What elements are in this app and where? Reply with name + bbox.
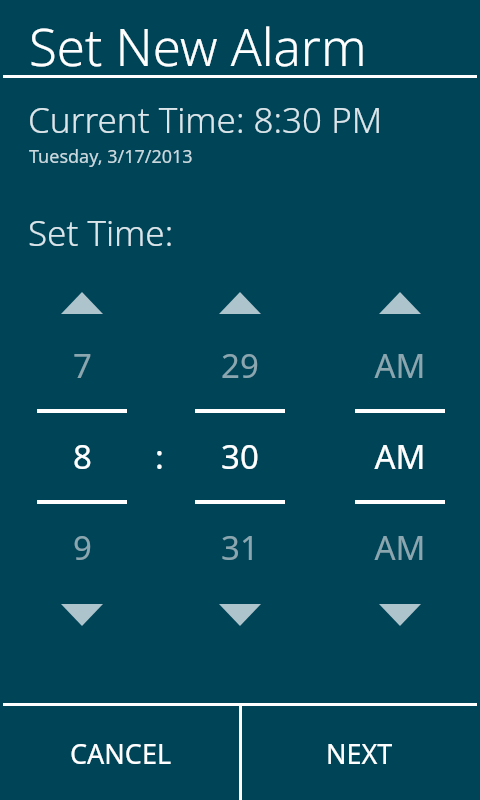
staticText: 31 bbox=[221, 525, 259, 570]
staticText: Tuesday, 3/17/2013 bbox=[29, 144, 193, 169]
staticText: AM bbox=[374, 525, 426, 570]
staticText: Set New Alarm bbox=[29, 11, 367, 80]
staticText: 30 bbox=[221, 434, 259, 479]
button[interactable]: Increase minute bbox=[185, 282, 295, 324]
button[interactable]: Decrease hour bbox=[27, 594, 137, 636]
button[interactable]: Decrease meridiem bbox=[345, 594, 455, 636]
staticText: CANCEL bbox=[70, 735, 172, 772]
staticText: Set Time: bbox=[28, 209, 174, 257]
button[interactable]: NEXT bbox=[242, 706, 477, 800]
staticText: 7 bbox=[73, 343, 92, 388]
button[interactable]: 8 bbox=[27, 413, 137, 500]
button[interactable]: CANCEL bbox=[3, 706, 239, 800]
staticText: 29 bbox=[221, 343, 259, 388]
button[interactable]: Increase hour bbox=[27, 282, 137, 324]
button[interactable]: Decrease minute bbox=[185, 594, 295, 636]
staticText: : bbox=[155, 434, 164, 479]
staticText: Current Time: 8:30 PM bbox=[28, 96, 383, 144]
staticText: 9 bbox=[73, 525, 92, 570]
staticText: NEXT bbox=[326, 735, 393, 772]
button[interactable]: Increase meridiem bbox=[345, 282, 455, 324]
button[interactable]: 30 bbox=[185, 413, 295, 500]
staticText: AM bbox=[374, 343, 426, 388]
staticText: 8 bbox=[73, 434, 92, 479]
button[interactable]: AM bbox=[345, 413, 455, 500]
staticText: AM bbox=[374, 434, 426, 479]
